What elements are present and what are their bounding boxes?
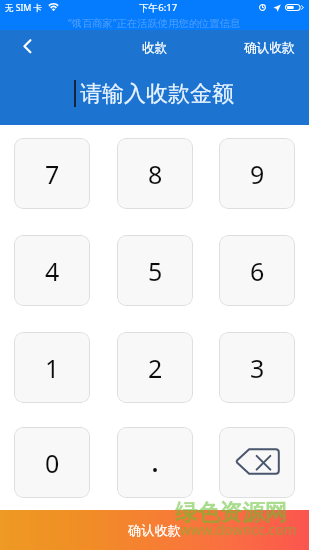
- button[interactable]: 6: [219, 235, 295, 306]
- button[interactable]: 5: [117, 235, 193, 306]
- staticText: 0: [45, 446, 60, 480]
- staticText: 确认收款: [128, 522, 181, 539]
- staticText: 5: [148, 254, 163, 288]
- staticText: “饿百商家”正在活跃使用您的位置信息: [68, 16, 241, 30]
- button[interactable]: Back: [11, 30, 44, 63]
- staticText: 下午6:17: [139, 1, 178, 14]
- staticText: 7: [45, 157, 60, 191]
- staticText: 请输入收款金额: [80, 80, 234, 108]
- staticText: 6: [250, 254, 265, 288]
- button[interactable]: 0: [14, 427, 90, 498]
- staticText: www.downcc.com: [180, 520, 297, 539]
- staticText: 3: [250, 351, 265, 385]
- staticText: 8: [148, 157, 163, 191]
- staticText: 绿色资源网: [175, 498, 287, 526]
- button[interactable]: 2: [117, 332, 193, 403]
- button[interactable]: 确认收款: [0, 510, 309, 550]
- staticText: 无 SIM 卡: [5, 2, 43, 14]
- button[interactable]: 4: [14, 235, 90, 306]
- staticText: 4: [45, 254, 60, 288]
- button[interactable]: 1: [14, 332, 90, 403]
- button[interactable]: 3: [219, 332, 295, 403]
- button[interactable]: [117, 427, 193, 498]
- button[interactable]: Delete: [219, 427, 295, 498]
- button[interactable]: 9: [219, 138, 295, 209]
- button[interactable]: 8: [117, 138, 193, 209]
- staticText: 确认收款: [244, 40, 295, 56]
- staticText: 2: [148, 351, 163, 385]
- staticText: 1: [45, 351, 60, 385]
- button[interactable]: 确认收款: [234, 30, 309, 65]
- staticText: 收款: [142, 40, 167, 56]
- staticText: 9: [250, 157, 265, 191]
- button[interactable]: 7: [14, 138, 90, 209]
